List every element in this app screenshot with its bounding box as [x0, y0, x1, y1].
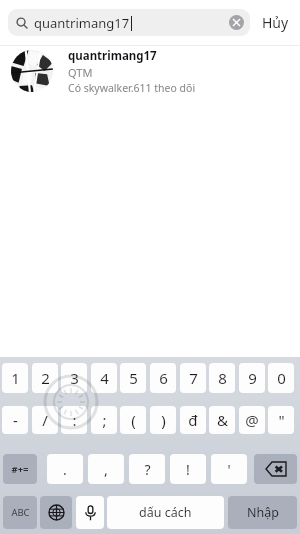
button[interactable]: " [268, 406, 294, 434]
button[interactable]: @ [239, 406, 265, 434]
staticText: @ [245, 410, 259, 430]
button[interactable]: 5 [120, 363, 146, 393]
staticText: 8 [218, 368, 227, 388]
staticText: quantrimang17 [34, 14, 130, 32]
button[interactable]: Nhập [228, 496, 297, 529]
staticText: - [13, 410, 18, 430]
staticText: Nhập [247, 504, 279, 521]
staticText: ' [227, 460, 231, 479]
staticText: & [217, 410, 228, 430]
staticText: #+= [11, 463, 29, 476]
button[interactable]: 7 [180, 363, 206, 393]
button[interactable]: , [88, 454, 124, 484]
staticText: ; [102, 410, 107, 430]
button[interactable]: Change keyboard language [40, 496, 72, 529]
staticText: ? [144, 460, 151, 479]
button[interactable]: 1 [2, 363, 28, 393]
button[interactable]: ( [120, 406, 146, 434]
button[interactable]: quantrimang17 [0, 46, 300, 96]
button[interactable]: 2 [32, 363, 58, 393]
button[interactable]: 9 [239, 363, 265, 393]
staticText: " [278, 410, 285, 430]
staticText: ABC [11, 506, 30, 519]
button[interactable]: #+= [3, 454, 37, 484]
staticText: 4 [100, 368, 109, 388]
button[interactable]: 4 [91, 363, 117, 393]
button[interactable]: ? [129, 454, 165, 484]
button[interactable]: - [2, 406, 28, 434]
staticText: Hủy [262, 13, 289, 32]
button[interactable]: Hủy [250, 0, 300, 45]
staticText: , [104, 460, 108, 479]
button[interactable]: : [61, 406, 87, 434]
staticText: 3 [70, 368, 79, 388]
button[interactable]: & [209, 406, 235, 434]
button[interactable]: 6 [150, 363, 176, 393]
button[interactable]: ! [170, 454, 206, 484]
staticText: ! [186, 460, 190, 479]
button[interactable]: 3 [61, 363, 87, 393]
staticText: 5 [129, 368, 138, 388]
button[interactable]: đ [180, 406, 206, 434]
button[interactable]: dấu cách [107, 496, 224, 529]
staticText: 0 [277, 368, 286, 388]
button[interactable]: ABC [3, 496, 37, 529]
button[interactable]: quantrimang17 [8, 9, 250, 36]
staticText: 7 [189, 368, 198, 388]
staticText: QTM [68, 65, 93, 80]
staticText: dấu cách [139, 504, 192, 521]
staticText: ( [131, 410, 136, 430]
button[interactable]: Backspace [254, 454, 297, 484]
button[interactable]: Clear text [229, 15, 244, 30]
staticText: 2 [41, 368, 50, 388]
staticText: 6 [159, 368, 168, 388]
staticText: 9 [248, 368, 257, 388]
button[interactable]: ' [211, 454, 247, 484]
staticText: Có skywalker.611 theo dõi [68, 81, 196, 95]
button[interactable]: ; [91, 406, 117, 434]
button[interactable]: Voice input [76, 496, 104, 529]
staticText: 1 [11, 368, 20, 388]
staticText: đ [188, 410, 198, 430]
staticText: quantrimang17 [68, 48, 157, 64]
button[interactable]: 0 [268, 363, 294, 393]
staticText: : [72, 410, 77, 430]
staticText: ) [161, 410, 166, 430]
button[interactable]: / [32, 406, 58, 434]
button[interactable]: 8 [209, 363, 235, 393]
staticText: / [42, 410, 48, 430]
staticText: . [63, 460, 67, 479]
button[interactable]: . [47, 454, 83, 484]
button[interactable]: ) [150, 406, 176, 434]
